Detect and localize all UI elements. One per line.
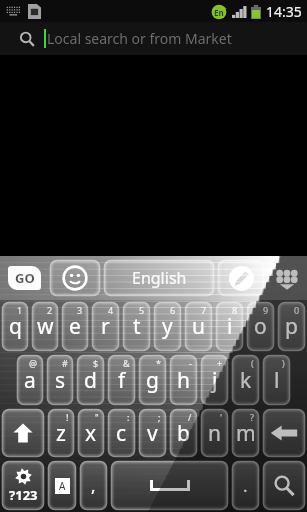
staticText: o <box>254 312 267 341</box>
staticText: $ <box>93 357 99 369</box>
button[interactable]: l <box>263 355 290 405</box>
staticText: 7 <box>201 304 207 316</box>
button[interactable]: c <box>108 409 135 457</box>
staticText: 3 <box>77 304 83 316</box>
staticText: & <box>123 357 130 369</box>
staticText: , <box>91 474 96 497</box>
staticText: # <box>62 357 68 369</box>
staticText: @ <box>29 357 38 369</box>
button[interactable]: b <box>170 409 197 457</box>
button[interactable]: f <box>108 355 135 405</box>
button[interactable]: Shift <box>2 409 44 457</box>
staticText: w <box>37 312 54 341</box>
button[interactable]: a <box>17 355 43 405</box>
staticText: r <box>101 312 110 341</box>
button[interactable]: . <box>232 461 259 510</box>
button[interactable]: Hide keyboard <box>266 256 307 300</box>
staticText: - <box>189 357 192 369</box>
button[interactable]: Input method <box>48 461 76 510</box>
staticText: ? <box>250 411 254 423</box>
button[interactable]: Handwriting <box>218 260 264 296</box>
button[interactable]: u <box>185 302 212 351</box>
button[interactable]: q <box>2 302 28 351</box>
button[interactable]: i <box>216 302 243 351</box>
staticText: GO <box>15 269 35 287</box>
button[interactable]: s <box>47 355 73 405</box>
staticText: l <box>274 366 280 395</box>
staticText: ; <box>158 411 161 423</box>
staticText: t <box>133 312 141 341</box>
staticText: j <box>212 366 218 395</box>
button[interactable]: , <box>80 461 107 510</box>
button[interactable]: y <box>154 302 181 351</box>
button[interactable]: w <box>32 302 58 351</box>
staticText: * <box>156 357 161 369</box>
button[interactable]: Emoji <box>50 260 100 296</box>
staticText: 1 <box>17 304 23 316</box>
staticText: 14:35 <box>266 2 302 21</box>
staticText: ' <box>220 411 223 423</box>
staticText: ?123 <box>9 486 38 504</box>
button[interactable]: v <box>139 409 166 457</box>
button[interactable]: English <box>104 260 214 296</box>
button[interactable]: g <box>139 355 166 405</box>
button[interactable]: h <box>170 355 197 405</box>
staticText: b <box>177 419 190 448</box>
staticText: e <box>69 312 81 341</box>
staticText: 5 <box>139 304 145 316</box>
button[interactable]: x <box>78 409 104 457</box>
button[interactable]: Local search or from Market <box>0 29 307 48</box>
staticText: 0 <box>294 304 300 316</box>
button[interactable]: j <box>201 355 228 405</box>
button[interactable]: e <box>62 302 88 351</box>
button[interactable]: k <box>232 355 259 405</box>
staticText: En <box>214 7 224 18</box>
staticText: i <box>227 312 233 341</box>
staticText: ( <box>251 357 254 369</box>
staticText: k <box>240 366 252 395</box>
button[interactable]: GO Keyboard menu <box>0 256 48 300</box>
staticText: 6 <box>170 304 176 316</box>
staticText: g <box>146 366 159 395</box>
staticText: c <box>116 419 127 448</box>
button[interactable]: p <box>278 302 305 351</box>
staticText: z <box>56 419 66 448</box>
staticText: English <box>132 267 187 289</box>
staticText: / <box>188 411 192 423</box>
button[interactable]: o <box>247 302 274 351</box>
staticText: . <box>243 474 248 497</box>
button[interactable]: t <box>123 302 150 351</box>
staticText: q <box>9 312 22 341</box>
staticText: d <box>84 366 97 395</box>
button[interactable]: Backspace <box>263 409 305 457</box>
button[interactable]: m <box>232 409 259 457</box>
staticText: + <box>217 357 223 369</box>
staticText: v <box>147 419 158 448</box>
button[interactable]: Space <box>111 461 228 510</box>
staticText: ) <box>282 357 285 369</box>
button[interactable]: Symbols <box>2 461 44 510</box>
staticText: Local search or from Market <box>47 29 232 48</box>
staticText: u <box>192 312 205 341</box>
staticText: 2 <box>47 304 53 316</box>
staticText: y <box>162 312 173 341</box>
staticText: a <box>24 366 36 395</box>
staticText: 9 <box>263 304 269 316</box>
staticText: f <box>118 366 126 395</box>
button[interactable]: d <box>77 355 104 405</box>
button[interactable]: r <box>92 302 119 351</box>
button[interactable]: n <box>201 409 228 457</box>
staticText: s <box>55 366 66 395</box>
staticText: p <box>285 312 298 341</box>
staticText: A <box>59 479 66 493</box>
staticText: " <box>95 411 99 423</box>
staticText: 8 <box>232 304 238 316</box>
staticText: 4 <box>108 304 114 316</box>
button[interactable]: z <box>48 409 74 457</box>
button[interactable]: Search <box>263 461 305 510</box>
staticText: : <box>127 411 130 423</box>
staticText: m <box>236 419 256 448</box>
staticText: h <box>177 366 190 395</box>
staticText: x <box>85 419 97 448</box>
staticText: ! <box>66 411 69 423</box>
